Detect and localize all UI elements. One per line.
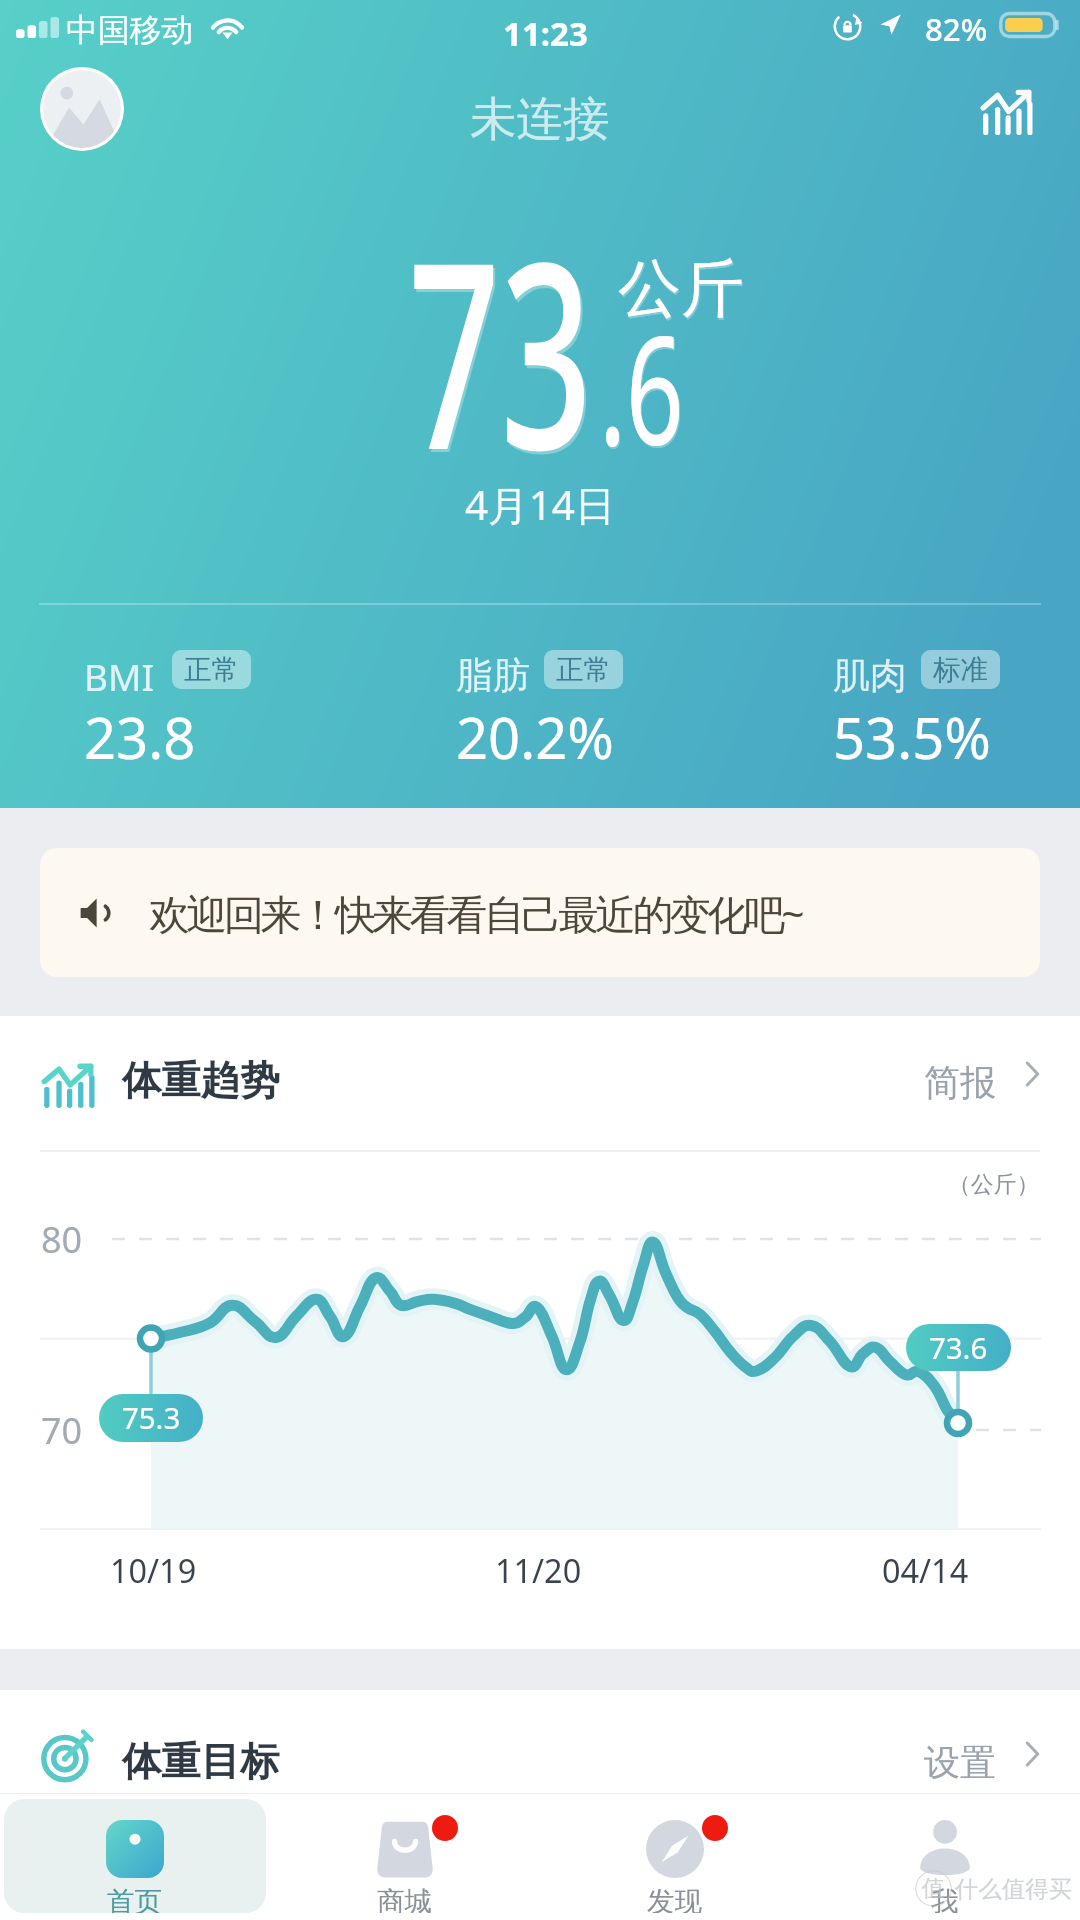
staticText: .6: [599, 285, 684, 489]
button[interactable]: Statistics: [968, 74, 1044, 146]
staticText: BMI: [84, 652, 154, 702]
staticText: 正常: [184, 652, 240, 687]
staticText: 4月14日: [465, 477, 616, 532]
staticText: 公斤: [618, 249, 744, 328]
staticText: 73.6: [929, 1328, 988, 1368]
staticText: 73: [408, 173, 593, 524]
button[interactable]: 脂肪: [456, 650, 614, 726]
staticText: 80: [41, 1215, 83, 1264]
button[interactable]: 我: [814, 1799, 1076, 1913]
staticText: 设置: [924, 1740, 996, 1785]
staticText: 商城: [377, 1884, 433, 1913]
staticText: 23.8: [84, 699, 196, 775]
staticText: 未连接: [470, 90, 610, 149]
staticText: 11:23: [503, 11, 588, 56]
button[interactable]: Profile: [40, 67, 124, 151]
button[interactable]: 体重趋势: [0, 1016, 1080, 1150]
staticText: 什么值得买: [955, 1874, 1072, 1903]
button[interactable]: 商城: [274, 1799, 536, 1913]
staticText: 公斤: [619, 251, 745, 330]
staticText: 发现: [647, 1884, 703, 1913]
staticText: 体重趋势: [122, 1056, 280, 1106]
staticText: 欢迎回来！快来看看自己最近的变化吧~: [149, 885, 802, 941]
staticText: 中国移动: [66, 10, 194, 50]
button[interactable]: 欢迎回来！快来看看自己最近的变化吧~: [40, 848, 1040, 977]
staticText: 75.3: [122, 1398, 181, 1438]
staticText: 值: [922, 1874, 945, 1903]
staticText: 我: [931, 1884, 959, 1913]
button[interactable]: 发现: [544, 1799, 806, 1913]
staticText: 11/20: [495, 1548, 582, 1592]
staticText: 简报: [924, 1060, 996, 1105]
staticText: 肌肉: [833, 652, 907, 698]
button[interactable]: BMI: [84, 650, 196, 726]
staticText: .6: [600, 287, 685, 491]
staticText: 20.2%: [456, 699, 614, 775]
staticText: 正常: [556, 652, 612, 687]
button[interactable]: 体重目标: [0, 1690, 1080, 1793]
button[interactable]: 肌肉: [833, 650, 991, 726]
staticText: 73: [410, 176, 595, 527]
staticText: 体重目标: [122, 1737, 280, 1787]
staticText: 标准: [933, 652, 989, 687]
staticText: 首页: [107, 1884, 163, 1913]
staticText: 04/14: [882, 1548, 969, 1592]
staticText: 82%: [925, 8, 988, 50]
staticText: 10/19: [110, 1548, 197, 1592]
staticText: 53.5%: [833, 699, 991, 775]
button[interactable]: 首页: [4, 1799, 266, 1913]
staticText: （公斤）: [948, 1170, 1040, 1199]
staticText: 70: [41, 1406, 83, 1455]
staticText: 脂肪: [456, 652, 530, 698]
